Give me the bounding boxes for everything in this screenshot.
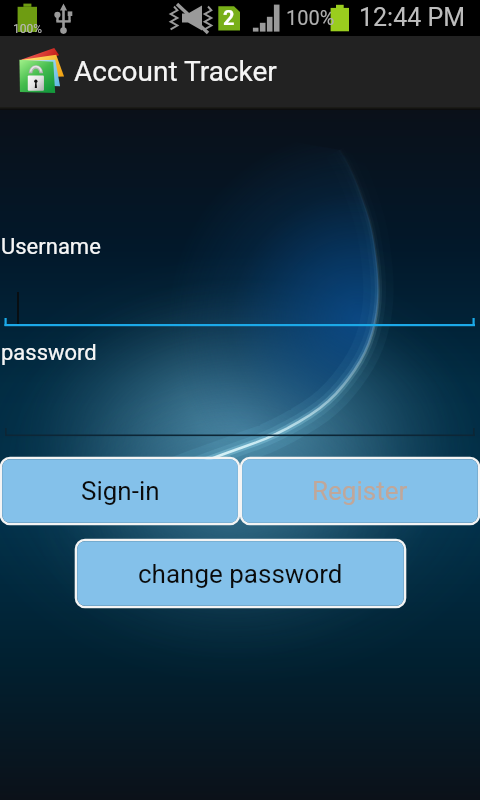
staticText: Username <box>1 234 101 260</box>
staticText: Register <box>312 476 408 506</box>
staticText: Sign-in <box>81 476 160 506</box>
button[interactable]: Sign-in <box>1 458 239 524</box>
staticText: change password <box>138 559 343 589</box>
staticText: 12:44 PM <box>359 3 466 32</box>
button[interactable]: Account Tracker home <box>17 47 66 96</box>
button[interactable]: Register <box>241 458 479 524</box>
staticText: password <box>1 340 97 366</box>
staticText: 100% <box>13 22 43 36</box>
staticText: 100% <box>286 6 335 29</box>
button[interactable]: change password <box>76 540 405 607</box>
staticText: Account Tracker <box>74 55 277 88</box>
staticText: 2 <box>223 6 235 29</box>
